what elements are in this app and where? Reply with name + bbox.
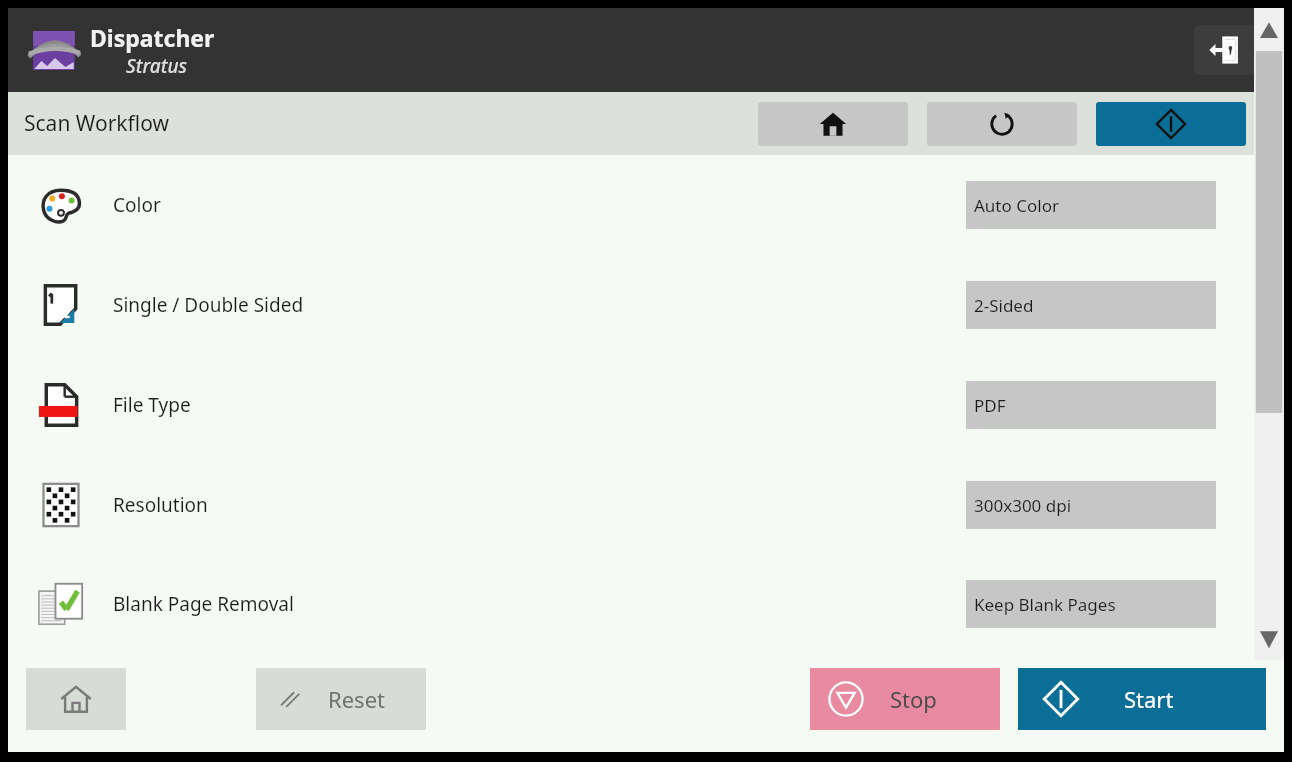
- button[interactable]: Start: [1096, 102, 1246, 146]
- button[interactable]: Home: [26, 668, 126, 730]
- button[interactable]: Home: [758, 102, 908, 146]
- button[interactable]: Refresh: [927, 102, 1077, 146]
- staticText: Resolution: [113, 492, 966, 518]
- staticText: Start: [1124, 684, 1174, 714]
- button[interactable]: Auto Color: [966, 181, 1216, 229]
- button[interactable]: File Type: [8, 355, 1284, 455]
- staticText: Stratus: [126, 53, 188, 79]
- button[interactable]: Reset: [256, 668, 426, 730]
- button[interactable]: Blank Page Removal: [8, 555, 1284, 652]
- staticText: Stop: [890, 684, 937, 714]
- staticText: 300x300 dpi: [974, 494, 1072, 517]
- button[interactable]: Keep Blank Pages: [966, 580, 1216, 628]
- staticText: Keep Blank Pages: [974, 593, 1116, 616]
- button[interactable]: PDF: [966, 381, 1216, 429]
- staticText: Dispatcher: [90, 22, 215, 53]
- button[interactable]: 300x300 dpi: [966, 481, 1216, 529]
- staticText: PDF: [974, 394, 1006, 417]
- staticText: Blank Page Removal: [113, 591, 966, 617]
- button[interactable]: 2-Sided: [966, 281, 1216, 329]
- staticText: Color: [113, 192, 966, 218]
- button[interactable]: Log out: [1194, 25, 1256, 75]
- staticText: Reset: [328, 684, 385, 714]
- button[interactable]: Stop: [810, 668, 1000, 730]
- staticText: File Type: [113, 392, 966, 418]
- button[interactable]: Color: [8, 155, 1284, 255]
- staticText: Scan Workflow: [24, 109, 169, 138]
- staticText: Auto Color: [974, 194, 1059, 217]
- button[interactable]: Start: [1018, 668, 1266, 730]
- staticText: Single / Double Sided: [113, 292, 966, 318]
- button[interactable]: Resolution: [8, 455, 1284, 555]
- button[interactable]: Single / Double Sided: [8, 255, 1284, 355]
- staticText: 2-Sided: [974, 294, 1034, 317]
